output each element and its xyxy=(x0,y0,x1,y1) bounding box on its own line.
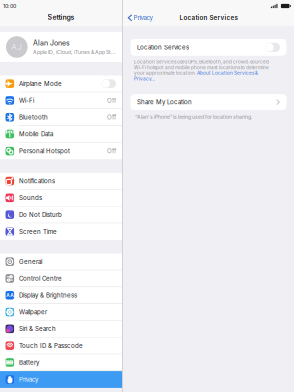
staticText: Wallpaper xyxy=(19,308,47,316)
button[interactable]: Wi-Fi xyxy=(0,92,122,109)
staticText: Privacy xyxy=(19,376,38,383)
button[interactable]: Control Centre xyxy=(0,270,122,287)
button[interactable]: Notifications xyxy=(0,173,122,190)
staticText: Control Centre xyxy=(19,275,62,282)
staticText: Touch ID & Passcode xyxy=(19,342,83,349)
staticText: Mobile Data xyxy=(19,130,53,138)
button[interactable]: Wallpaper xyxy=(0,304,122,321)
staticText: Off xyxy=(107,147,116,155)
staticText: Battery xyxy=(19,359,39,366)
button[interactable]: AA xyxy=(0,287,122,304)
button[interactable]: Battery xyxy=(0,354,122,371)
button[interactable]: General xyxy=(0,253,122,270)
button[interactable]: Personal Hotspot xyxy=(0,143,122,159)
staticText: Location Services xyxy=(179,14,237,21)
button[interactable]: Bluetooth xyxy=(0,109,122,126)
button[interactable]: Privacy xyxy=(0,371,122,388)
button[interactable]: Sounds xyxy=(0,190,122,206)
staticText: Off xyxy=(107,113,116,121)
button[interactable]: Privacy xyxy=(123,14,152,26)
staticText: Location Services xyxy=(137,44,189,51)
staticText: Apple ID, iCloud, iTunes & App St… xyxy=(33,49,116,55)
staticText: 10:00 xyxy=(3,3,16,9)
staticText: General xyxy=(19,258,42,265)
button[interactable]: Airplane Mode xyxy=(0,75,122,92)
staticText: Privacy xyxy=(133,14,152,21)
staticText: Share My Location xyxy=(137,98,192,106)
staticText: AA xyxy=(6,292,13,298)
staticText: “Alan's iPhone” is being used for locati… xyxy=(135,114,252,120)
button[interactable]: Share My Location xyxy=(130,94,286,110)
button[interactable]: Touch ID & Passcode xyxy=(0,337,122,354)
staticText: Display & Brightness xyxy=(19,291,77,299)
staticText: Sounds xyxy=(19,194,42,201)
staticText: Location Services uses GPS, Bluetooth, a… xyxy=(134,59,269,82)
button[interactable]: Mobile Data xyxy=(0,126,122,143)
button[interactable]: AJ xyxy=(0,32,122,62)
staticText: Bluetooth xyxy=(19,113,48,121)
staticText: AJ xyxy=(11,42,22,52)
button[interactable]: Location Services xyxy=(130,39,286,56)
staticText: Wi-Fi xyxy=(19,97,34,104)
staticText: Siri & Search xyxy=(19,325,56,332)
staticText: Notifications xyxy=(19,177,55,185)
button[interactable]: Do Not Disturb xyxy=(0,206,122,223)
staticText: Screen Time xyxy=(19,228,57,235)
button[interactable]: Screen Time xyxy=(0,223,122,240)
staticText: Off xyxy=(107,97,116,104)
staticText: Personal Hotspot xyxy=(19,147,70,155)
staticText: Settings xyxy=(47,13,74,21)
staticText: Airplane Mode xyxy=(19,80,62,87)
staticText: Do Not Disturb xyxy=(19,211,62,218)
button[interactable]: Siri & Search xyxy=(0,321,122,337)
staticText: Alan Jones xyxy=(33,39,70,47)
